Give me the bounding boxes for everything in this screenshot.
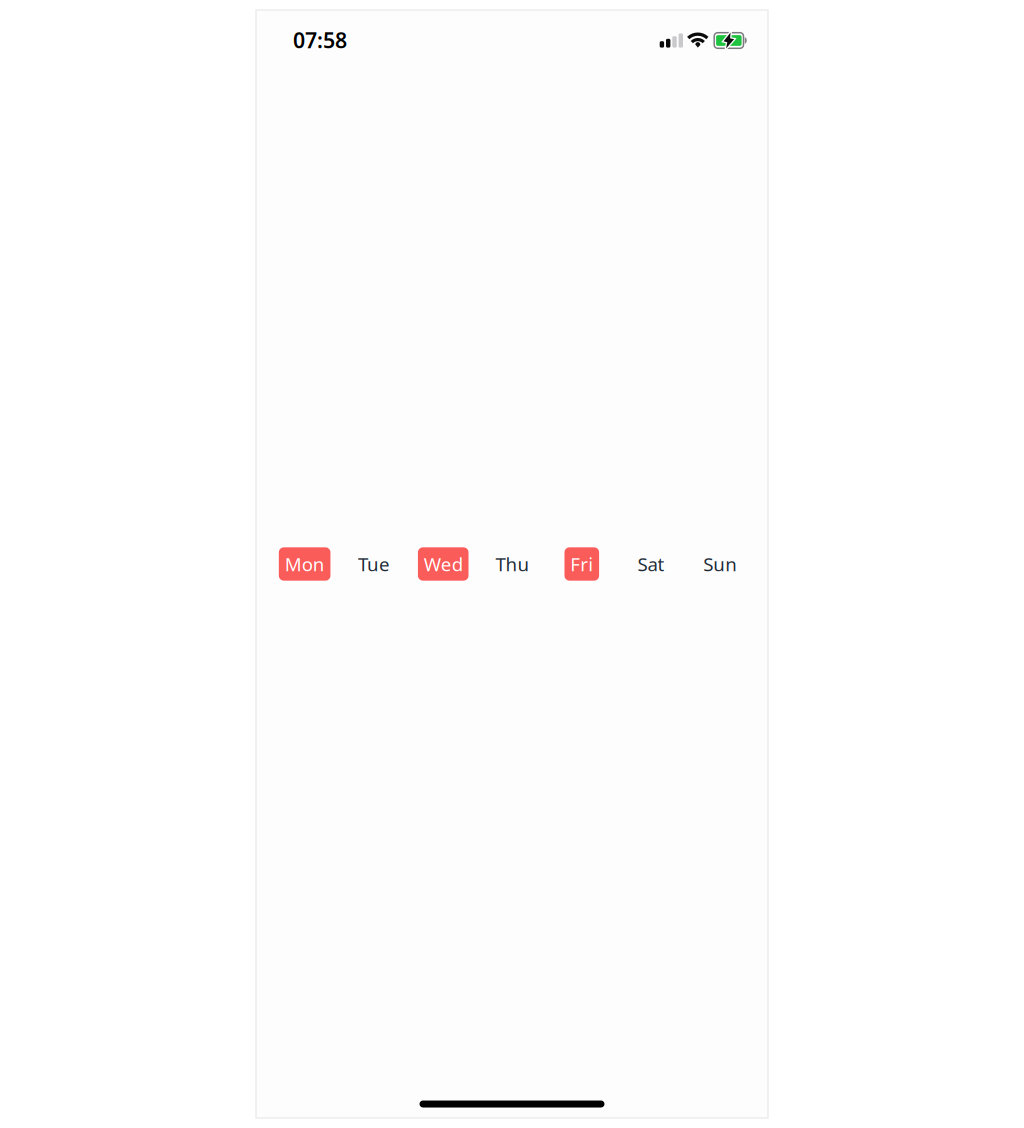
staticText: Thu (495, 552, 529, 576)
staticText: Wed (424, 552, 463, 576)
staticText: 07:58 (293, 26, 347, 54)
staticText: Fri (570, 552, 593, 576)
button[interactable]: Mon (270, 542, 339, 586)
staticText: Sat (638, 552, 665, 576)
button[interactable]: Fri (547, 542, 616, 586)
staticText: Tue (358, 552, 390, 576)
button[interactable]: Tue (339, 542, 409, 586)
button[interactable]: Thu (478, 542, 547, 586)
button[interactable]: Sun (686, 542, 755, 586)
button[interactable]: Sat (616, 542, 686, 586)
button[interactable]: Wed (409, 542, 478, 586)
staticText: Mon (285, 552, 325, 576)
staticText: Sun (703, 552, 737, 576)
